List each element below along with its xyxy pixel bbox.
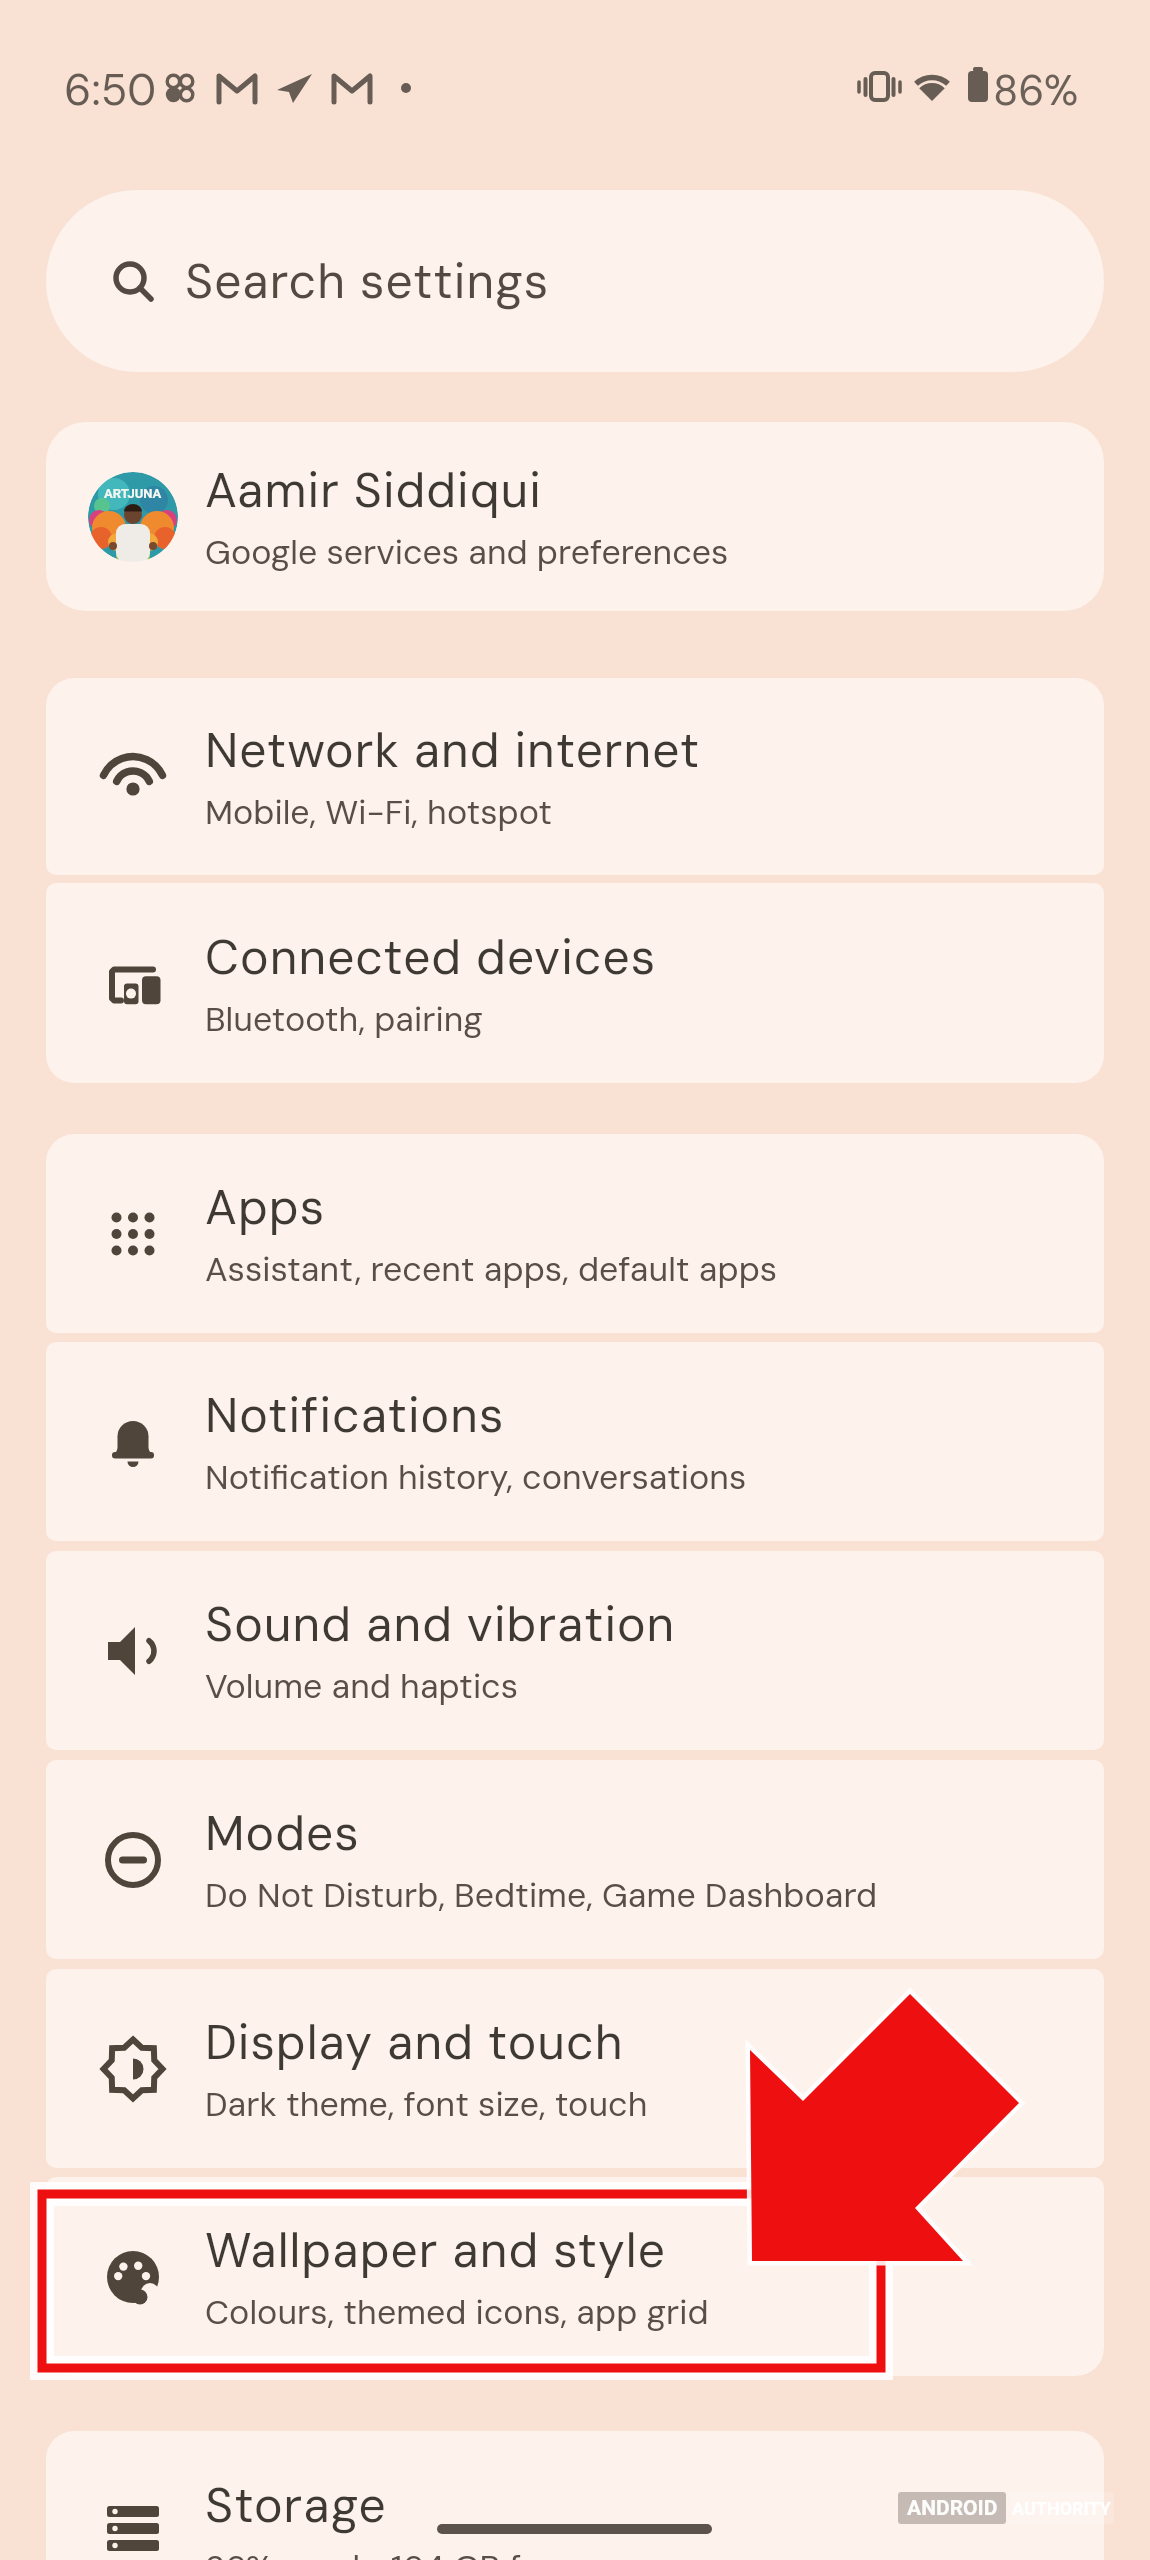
staticText: Assistant, recent apps, default apps bbox=[205, 1247, 778, 1291]
staticText: Do Not Disturb, Bedtime, Game Dashboard bbox=[205, 1873, 878, 1917]
button[interactable]: Search settings bbox=[46, 190, 1104, 372]
staticText: Modes bbox=[205, 1802, 360, 1864]
staticText: Volume and haptics bbox=[205, 1664, 519, 1708]
button[interactable]: Storage bbox=[46, 2431, 1104, 2560]
staticText: Notification history, conversations bbox=[205, 1455, 747, 1499]
staticText: Sound and vibration bbox=[205, 1593, 676, 1655]
staticText: 26% used • 164 GB free bbox=[205, 2545, 573, 2560]
staticText: Notifications bbox=[205, 1384, 505, 1446]
button[interactable]: Connected devices bbox=[46, 883, 1104, 1083]
staticText: Storage bbox=[205, 2474, 387, 2536]
button[interactable]: Notifications bbox=[46, 1342, 1104, 1541]
staticText: Apps bbox=[205, 1176, 326, 1238]
button[interactable]: ARTJUNA bbox=[46, 422, 1104, 611]
staticText: Dark theme, font size, touch bbox=[205, 2082, 648, 2126]
staticText: Display and touch bbox=[205, 2011, 624, 2073]
staticText: Google services and preferences bbox=[205, 530, 729, 574]
staticText: Wallpaper and style bbox=[205, 2219, 666, 2281]
button[interactable]: Apps bbox=[46, 1134, 1104, 1333]
staticText: Network and internet bbox=[205, 719, 701, 781]
staticText: Bluetooth, pairing bbox=[205, 997, 483, 1041]
staticText: Connected devices bbox=[205, 926, 657, 988]
staticText: AUTHORITY bbox=[1012, 2498, 1112, 2519]
staticText: 6:50 bbox=[64, 61, 157, 118]
staticText: Colours, themed icons, app grid bbox=[205, 2290, 709, 2334]
button[interactable]: Wallpaper and style bbox=[46, 2177, 1104, 2376]
staticText: ANDROID bbox=[907, 2496, 998, 2521]
staticText: Mobile, Wi-Fi, hotspot bbox=[205, 790, 553, 834]
button[interactable]: Modes bbox=[46, 1760, 1104, 1959]
staticText: 86% bbox=[993, 63, 1079, 118]
button[interactable]: Sound and vibration bbox=[46, 1551, 1104, 1750]
button[interactable]: Network and internet bbox=[46, 678, 1104, 875]
staticText: ARTJUNA bbox=[104, 486, 162, 501]
staticText: Search settings bbox=[185, 250, 550, 312]
staticText: Aamir Siddiqui bbox=[205, 459, 542, 521]
button[interactable]: Display and touch bbox=[46, 1969, 1104, 2168]
